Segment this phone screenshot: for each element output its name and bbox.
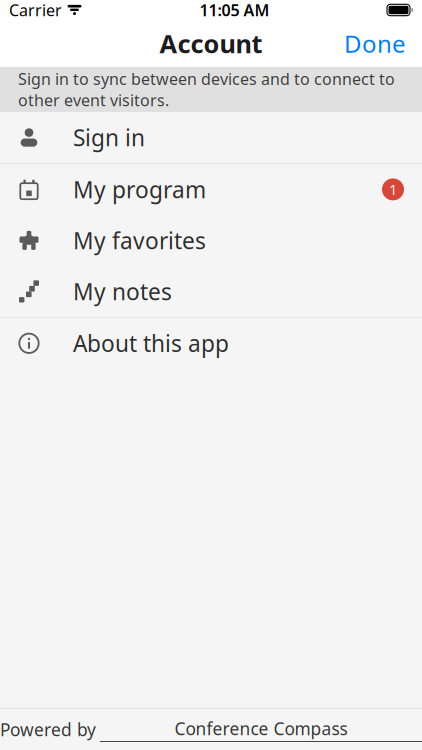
- staticText: Sign in: [73, 122, 145, 152]
- staticText: My program: [73, 174, 206, 204]
- staticText: About this app: [73, 328, 229, 358]
- button[interactable]: Sign in: [0, 112, 422, 163]
- staticText: 11:05 AM: [199, 0, 269, 21]
- button[interactable]: My program: [0, 164, 422, 215]
- staticText: Sign in to sync between devices and to c…: [18, 68, 395, 111]
- staticText: My favorites: [73, 225, 206, 255]
- staticText: Conference Compass: [174, 717, 347, 740]
- staticText: Powered by: [0, 718, 96, 741]
- button[interactable]: About this app: [0, 318, 422, 369]
- staticText: Carrier: [9, 0, 62, 21]
- button[interactable]: Conference Compass: [100, 717, 422, 742]
- staticText: 1: [389, 180, 397, 199]
- button[interactable]: My favorites: [0, 215, 422, 266]
- button[interactable]: My notes: [0, 266, 422, 317]
- staticText: Account: [159, 27, 262, 60]
- staticText: My notes: [73, 276, 172, 306]
- button[interactable]: Done: [328, 19, 422, 68]
- staticText: Done: [344, 28, 406, 59]
